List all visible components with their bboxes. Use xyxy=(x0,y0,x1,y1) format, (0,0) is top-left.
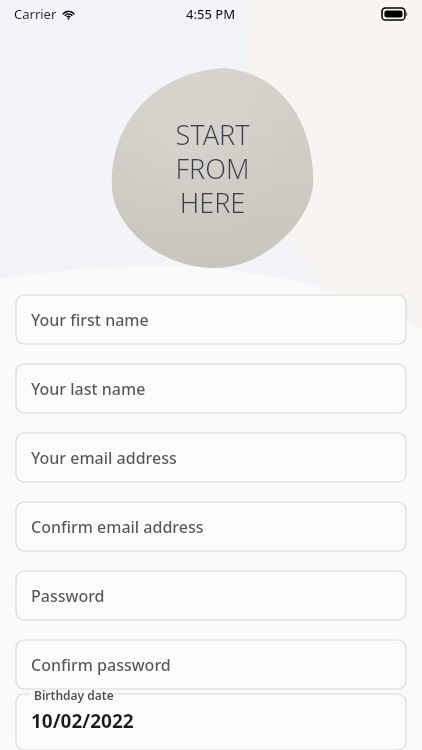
staticText: START FROM HERE xyxy=(175,116,250,221)
button[interactable]: Your last name xyxy=(16,364,406,413)
staticText: Your first name xyxy=(31,309,149,331)
button[interactable]: Birthday date xyxy=(16,694,406,750)
button[interactable]: Your email address xyxy=(16,433,406,482)
staticText: Birthday date xyxy=(34,687,114,703)
button[interactable]: Your first name xyxy=(16,295,406,344)
staticText: Your email address xyxy=(31,447,177,469)
button[interactable]: Password xyxy=(16,571,406,620)
staticText: Confirm email address xyxy=(31,516,204,538)
button[interactable]: Confirm email address xyxy=(16,502,406,551)
staticText: 10/02/2022 xyxy=(31,708,134,734)
staticText: Password xyxy=(31,585,105,607)
staticText: Confirm password xyxy=(31,654,171,676)
staticText: Carrier xyxy=(14,5,57,23)
button[interactable]: Confirm password xyxy=(16,640,406,689)
staticText: Your last name xyxy=(31,378,146,400)
button[interactable]: Start from here xyxy=(110,68,315,268)
staticText: 4:55 PM xyxy=(186,5,236,23)
